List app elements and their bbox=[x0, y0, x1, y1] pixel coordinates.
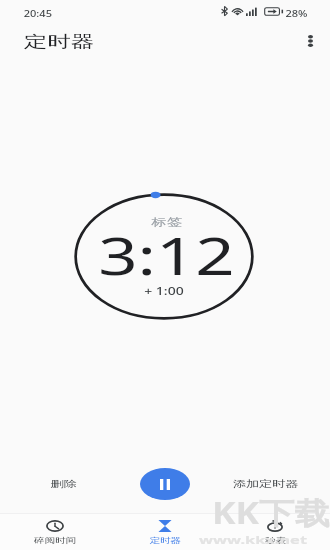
staticText: 28% bbox=[285, 8, 308, 19]
staticText: + 1:00 bbox=[144, 284, 185, 298]
button[interactable]: 定时器 bbox=[110, 513, 220, 550]
staticText: www.kkx.net bbox=[199, 532, 308, 547]
button[interactable]: 删除 bbox=[19, 468, 107, 500]
staticText: 标签 bbox=[152, 215, 182, 229]
staticText: 定时器 bbox=[24, 32, 94, 52]
button[interactable]: 秒表 bbox=[220, 513, 330, 550]
button[interactable]: Pause timer bbox=[139, 467, 191, 501]
button[interactable]: Timer dial bbox=[73, 192, 255, 321]
staticText: 添加定时器 bbox=[233, 478, 299, 490]
staticText: KK下载 bbox=[212, 492, 330, 528]
button[interactable]: 碎阅时间 bbox=[0, 513, 110, 550]
staticText: 碎阅时间 bbox=[34, 536, 76, 545]
staticText: 秒表 bbox=[265, 536, 286, 545]
button[interactable]: More options bbox=[296, 27, 324, 55]
staticText: 3:12 bbox=[98, 220, 236, 289]
staticText: 删除 bbox=[50, 478, 77, 490]
button[interactable]: 添加定时器 bbox=[222, 468, 310, 500]
staticText: 定时器 bbox=[149, 536, 182, 545]
staticText: 20:45 bbox=[24, 8, 52, 19]
